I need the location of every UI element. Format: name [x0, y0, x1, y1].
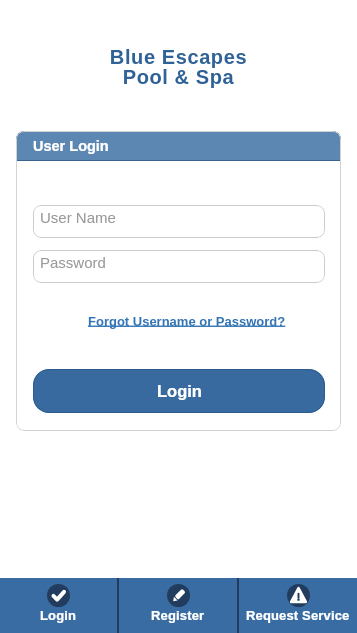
staticText: Password [40, 254, 106, 271]
staticText: Blue Escapes Pool & Spa [0, 46, 357, 88]
staticText: User Login [33, 138, 109, 154]
button[interactable]: Request Service [239, 578, 357, 633]
staticText: Request Service [246, 608, 350, 623]
staticText: Login [40, 608, 77, 623]
staticText: Register [151, 608, 205, 623]
button[interactable]: Password [33, 250, 325, 283]
button[interactable]: User Name [33, 205, 325, 238]
staticText: Login [157, 382, 202, 400]
button[interactable]: Forgot Username or Password? [88, 314, 286, 329]
button[interactable]: Login [33, 369, 325, 413]
staticText: User Name [40, 209, 116, 226]
button[interactable]: Register [119, 578, 237, 633]
button[interactable]: Login [0, 578, 117, 633]
